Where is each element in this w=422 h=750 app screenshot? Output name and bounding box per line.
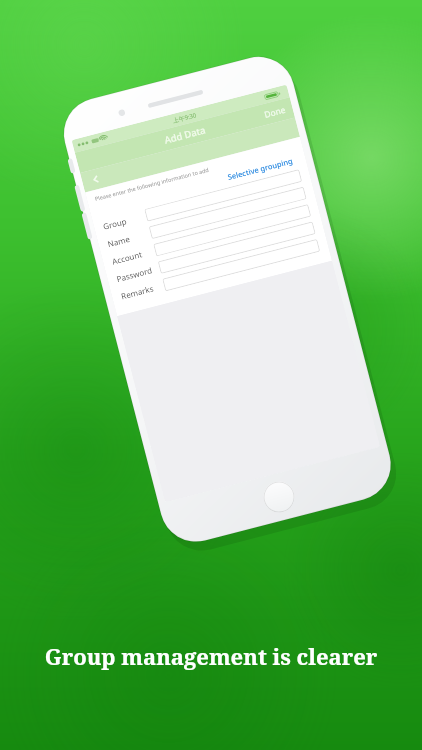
button[interactable]: Account [110, 201, 312, 269]
staticText: Done [263, 104, 287, 121]
button[interactable]: Remarks [119, 236, 321, 304]
staticText: Please enter the following information t… [94, 166, 210, 202]
staticText: Name [106, 233, 131, 249]
button[interactable]: Home [260, 478, 298, 516]
staticText: Add Data [163, 123, 207, 147]
staticText: Remarks [120, 283, 154, 301]
staticText: Password [115, 264, 154, 284]
staticText: Selective grouping [226, 156, 294, 182]
button[interactable]: Name [105, 184, 307, 252]
button[interactable]: Selective grouping [226, 156, 294, 182]
button[interactable]: Back [80, 166, 111, 192]
button[interactable]: Group [101, 166, 303, 235]
staticText: Group management is clearer [0, 641, 422, 671]
staticText: Account [111, 248, 144, 267]
button[interactable]: Done [262, 99, 288, 125]
button[interactable]: Password [114, 218, 316, 287]
staticText: Group [102, 215, 128, 232]
staticText: 上午9:30 [172, 111, 197, 125]
